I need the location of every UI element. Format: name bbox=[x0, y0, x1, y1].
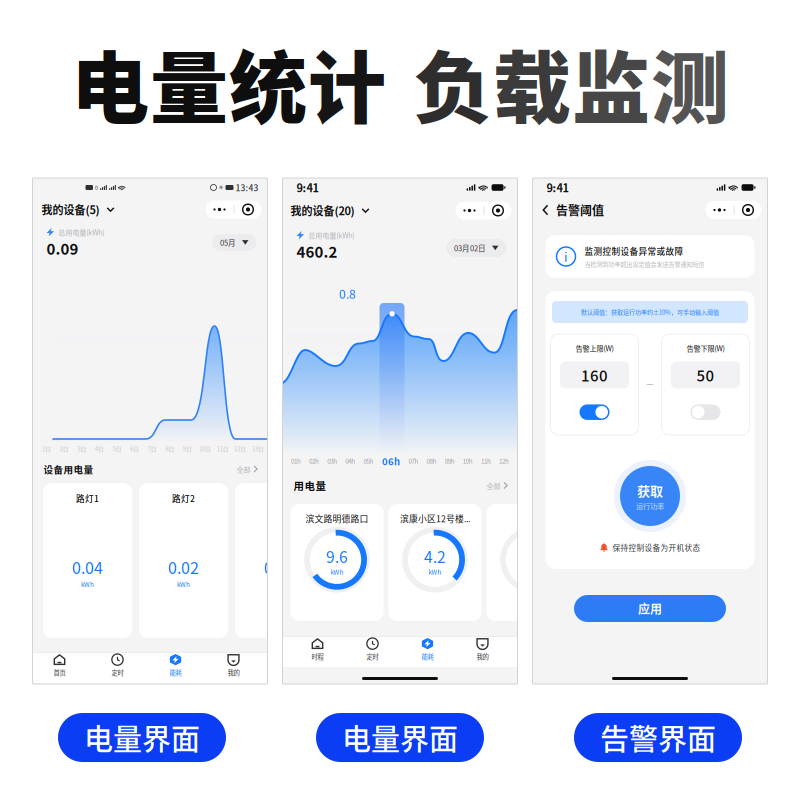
button[interactable]: Disable 告警上限(W) bbox=[579, 404, 609, 420]
button[interactable]: Close bbox=[734, 201, 761, 219]
staticText: 4日 bbox=[95, 444, 104, 453]
staticText: 路灯1 bbox=[76, 492, 99, 504]
button[interactable]: 应用 bbox=[574, 595, 726, 622]
staticText: 告警下限(W) bbox=[686, 343, 724, 353]
staticText: 05h bbox=[363, 456, 373, 465]
staticText: 总用电量(kWh) bbox=[58, 227, 104, 237]
staticText: 告警上限(W) bbox=[575, 343, 613, 353]
staticText: 13:43 bbox=[235, 181, 258, 194]
button[interactable]: 电量界面 bbox=[58, 713, 226, 762]
staticText: 0 bbox=[95, 184, 98, 191]
button[interactable]: 定时 bbox=[88, 653, 146, 683]
button[interactable]: 03月02日 bbox=[446, 239, 506, 257]
button[interactable]: 05月 bbox=[212, 234, 256, 251]
staticText: 监 bbox=[572, 26, 650, 139]
staticText: 定时 bbox=[111, 668, 123, 677]
staticText: 西兴公... bbox=[516, 512, 549, 525]
staticText: 滨文路明德路口 bbox=[305, 512, 368, 525]
staticText: 负 bbox=[414, 26, 492, 139]
staticText: 03月02日 bbox=[454, 242, 486, 253]
staticText: 定时 bbox=[366, 652, 378, 661]
staticText: 0.01 bbox=[264, 555, 295, 579]
staticText: 计 bbox=[308, 26, 386, 139]
staticText: kWh bbox=[81, 580, 94, 589]
staticText: 告警阈值 bbox=[556, 201, 604, 219]
button[interactable]: Close bbox=[484, 201, 511, 219]
staticText: 10日 bbox=[199, 444, 211, 453]
button[interactable]: 路灯1 bbox=[43, 483, 132, 638]
button[interactable]: More bbox=[705, 201, 733, 219]
staticText: 测 bbox=[651, 26, 729, 139]
button[interactable]: 定时 bbox=[345, 637, 400, 667]
staticText: 用电量 bbox=[293, 478, 326, 493]
staticText: 路灯3 bbox=[268, 492, 291, 504]
staticText: 全部 bbox=[236, 464, 250, 474]
staticText: 06h bbox=[382, 454, 400, 468]
staticText: kWh bbox=[177, 580, 190, 589]
staticText: 9:41 bbox=[546, 179, 568, 195]
staticText: 能耗 bbox=[169, 668, 181, 677]
staticText: 电量界面 bbox=[84, 716, 200, 758]
staticText: kWh bbox=[526, 567, 539, 576]
button[interactable]: 路灯3 bbox=[235, 483, 324, 638]
button[interactable]: Back bbox=[542, 201, 604, 219]
staticText: 04h bbox=[345, 456, 355, 465]
staticText: 01h bbox=[291, 456, 301, 465]
staticText: 总用电量(kWh) bbox=[308, 230, 354, 240]
button[interactable]: 电量界面 bbox=[316, 713, 484, 762]
button[interactable]: 时程 bbox=[290, 637, 345, 667]
staticText: 8日 bbox=[165, 444, 174, 453]
button[interactable]: 西兴公... bbox=[486, 504, 579, 621]
button[interactable]: 能耗 bbox=[400, 637, 455, 667]
button[interactable]: 我的 bbox=[455, 637, 510, 667]
staticText: 我的设备(5) bbox=[41, 201, 99, 217]
staticText: 50 bbox=[696, 364, 714, 386]
staticText: 我的设备(20) bbox=[290, 202, 354, 218]
staticText: 03h bbox=[327, 456, 337, 465]
staticText: 监测控制设备异常或故障 bbox=[584, 245, 683, 257]
button[interactable]: 我的 bbox=[204, 653, 262, 683]
button[interactable]: 首页 bbox=[30, 653, 88, 683]
staticText: 电量界面 bbox=[342, 716, 458, 758]
button[interactable]: 滨康小区12号楼... bbox=[388, 504, 481, 621]
staticText: 9日 bbox=[183, 444, 192, 453]
staticText: 08h bbox=[427, 456, 437, 465]
staticText: 0.8 bbox=[339, 285, 356, 302]
staticText: 11h bbox=[481, 456, 491, 465]
button[interactable]: 我的设备(20) bbox=[290, 202, 369, 218]
button[interactable]: 获取 bbox=[613, 459, 687, 533]
button[interactable]: Close bbox=[234, 200, 261, 218]
staticText: 设备用电量 bbox=[43, 462, 93, 476]
staticText: ✳ bbox=[218, 184, 223, 191]
staticText: 时程 bbox=[311, 652, 323, 661]
button[interactable]: Enable 告警下限(W) bbox=[690, 404, 720, 420]
button[interactable]: More bbox=[205, 200, 233, 218]
staticText: 2日 bbox=[60, 444, 69, 453]
button[interactable]: 全部 bbox=[486, 480, 507, 491]
staticText: 电 bbox=[71, 26, 149, 139]
staticText: 10h bbox=[463, 456, 473, 465]
staticText: 05月 bbox=[220, 237, 236, 248]
button[interactable]: More bbox=[455, 201, 483, 219]
staticText: 12h bbox=[499, 456, 509, 465]
staticText: 我的 bbox=[476, 652, 488, 661]
staticText: 1日 bbox=[42, 444, 51, 453]
button[interactable]: 告警界面 bbox=[574, 713, 742, 762]
staticText: 滨康小区12号楼... bbox=[400, 512, 470, 525]
button[interactable]: 路灯2 bbox=[139, 483, 228, 638]
button[interactable]: 滨文路明德路口 bbox=[290, 504, 383, 621]
button[interactable]: 能耗 bbox=[146, 653, 204, 683]
staticText: 09h bbox=[445, 456, 455, 465]
staticText: 当检测到功率超出设定值会发送告警通知短信 bbox=[584, 259, 704, 268]
staticText: 13日 bbox=[252, 444, 264, 453]
button[interactable]: 我的设备(5) bbox=[41, 201, 114, 217]
staticText: 默认阈值：获取运行功率约±10%，可手动输入阈值 bbox=[581, 308, 719, 316]
staticText: 统 bbox=[229, 26, 307, 139]
staticText: 0.04 bbox=[72, 555, 103, 579]
staticText: kWh bbox=[330, 567, 343, 576]
button[interactable]: 全部 bbox=[236, 464, 257, 474]
staticText: 5日 bbox=[112, 444, 121, 453]
staticText: 量 bbox=[150, 26, 228, 139]
staticText: 9:41 bbox=[296, 179, 318, 195]
